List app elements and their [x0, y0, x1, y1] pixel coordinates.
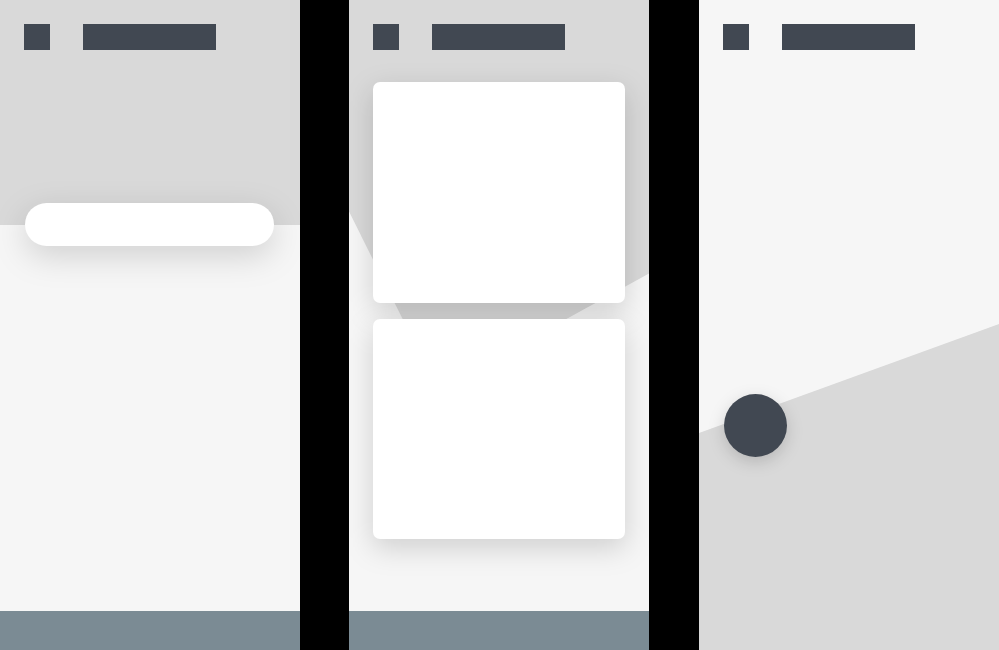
- button[interactable]: Search: [25, 203, 274, 246]
- button[interactable]: Create new: [724, 394, 787, 457]
